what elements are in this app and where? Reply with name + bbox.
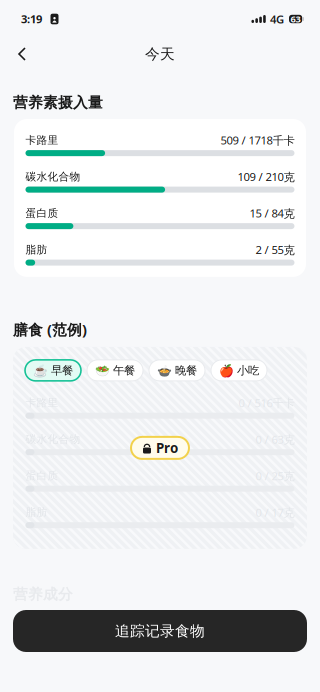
button[interactable]: 追踪记录食物: [13, 610, 307, 652]
staticText: 脂肪: [25, 506, 47, 519]
button[interactable]: 🍎: [211, 360, 267, 381]
staticText: 碳水化合物: [25, 170, 80, 183]
staticText: 2 / 55克: [255, 242, 294, 257]
staticText: 63: [291, 13, 301, 25]
staticText: 509 / 1718千卡: [220, 132, 294, 148]
staticText: 4G: [270, 11, 284, 27]
staticText: 🥗: [95, 363, 110, 377]
button[interactable]: 🍲: [149, 360, 205, 381]
staticText: 追踪记录食物: [115, 622, 205, 640]
button[interactable]: 🥗: [87, 360, 143, 381]
staticText: 3:19: [21, 11, 42, 27]
staticText: 卡路里: [25, 133, 58, 147]
staticText: 营养素摄入量: [13, 93, 103, 112]
staticText: ☕: [33, 363, 48, 377]
staticText: 今天: [145, 45, 175, 63]
staticText: 🍲: [157, 363, 172, 377]
button[interactable]: Back: [8, 40, 36, 68]
staticText: 卡路里: [25, 396, 58, 409]
staticText: 0 / 17克: [255, 505, 294, 520]
staticText: 午餐: [113, 363, 135, 378]
staticText: 蛋白质: [25, 469, 58, 482]
staticText: 109 / 210克: [237, 169, 294, 184]
staticText: 小吃: [237, 363, 259, 378]
staticText: 0 / 63克: [255, 432, 294, 447]
staticText: 膳食 (范例): [13, 319, 87, 339]
staticText: 晚餐: [175, 363, 197, 378]
staticText: 0 / 25克: [255, 468, 294, 483]
staticText: 脂肪: [25, 243, 47, 256]
staticText: 15 / 84克: [249, 205, 294, 221]
staticText: 蛋白质: [25, 206, 58, 220]
staticText: 营养成分: [13, 585, 73, 604]
staticText: 碳水化合物: [25, 433, 80, 446]
button[interactable]: ☕: [25, 360, 81, 381]
staticText: Pro: [156, 439, 178, 457]
staticText: 🍎: [219, 363, 234, 377]
button[interactable]: Pro: [131, 437, 189, 459]
staticText: 0 / 516千卡: [238, 395, 294, 410]
staticText: 早餐: [51, 363, 73, 378]
